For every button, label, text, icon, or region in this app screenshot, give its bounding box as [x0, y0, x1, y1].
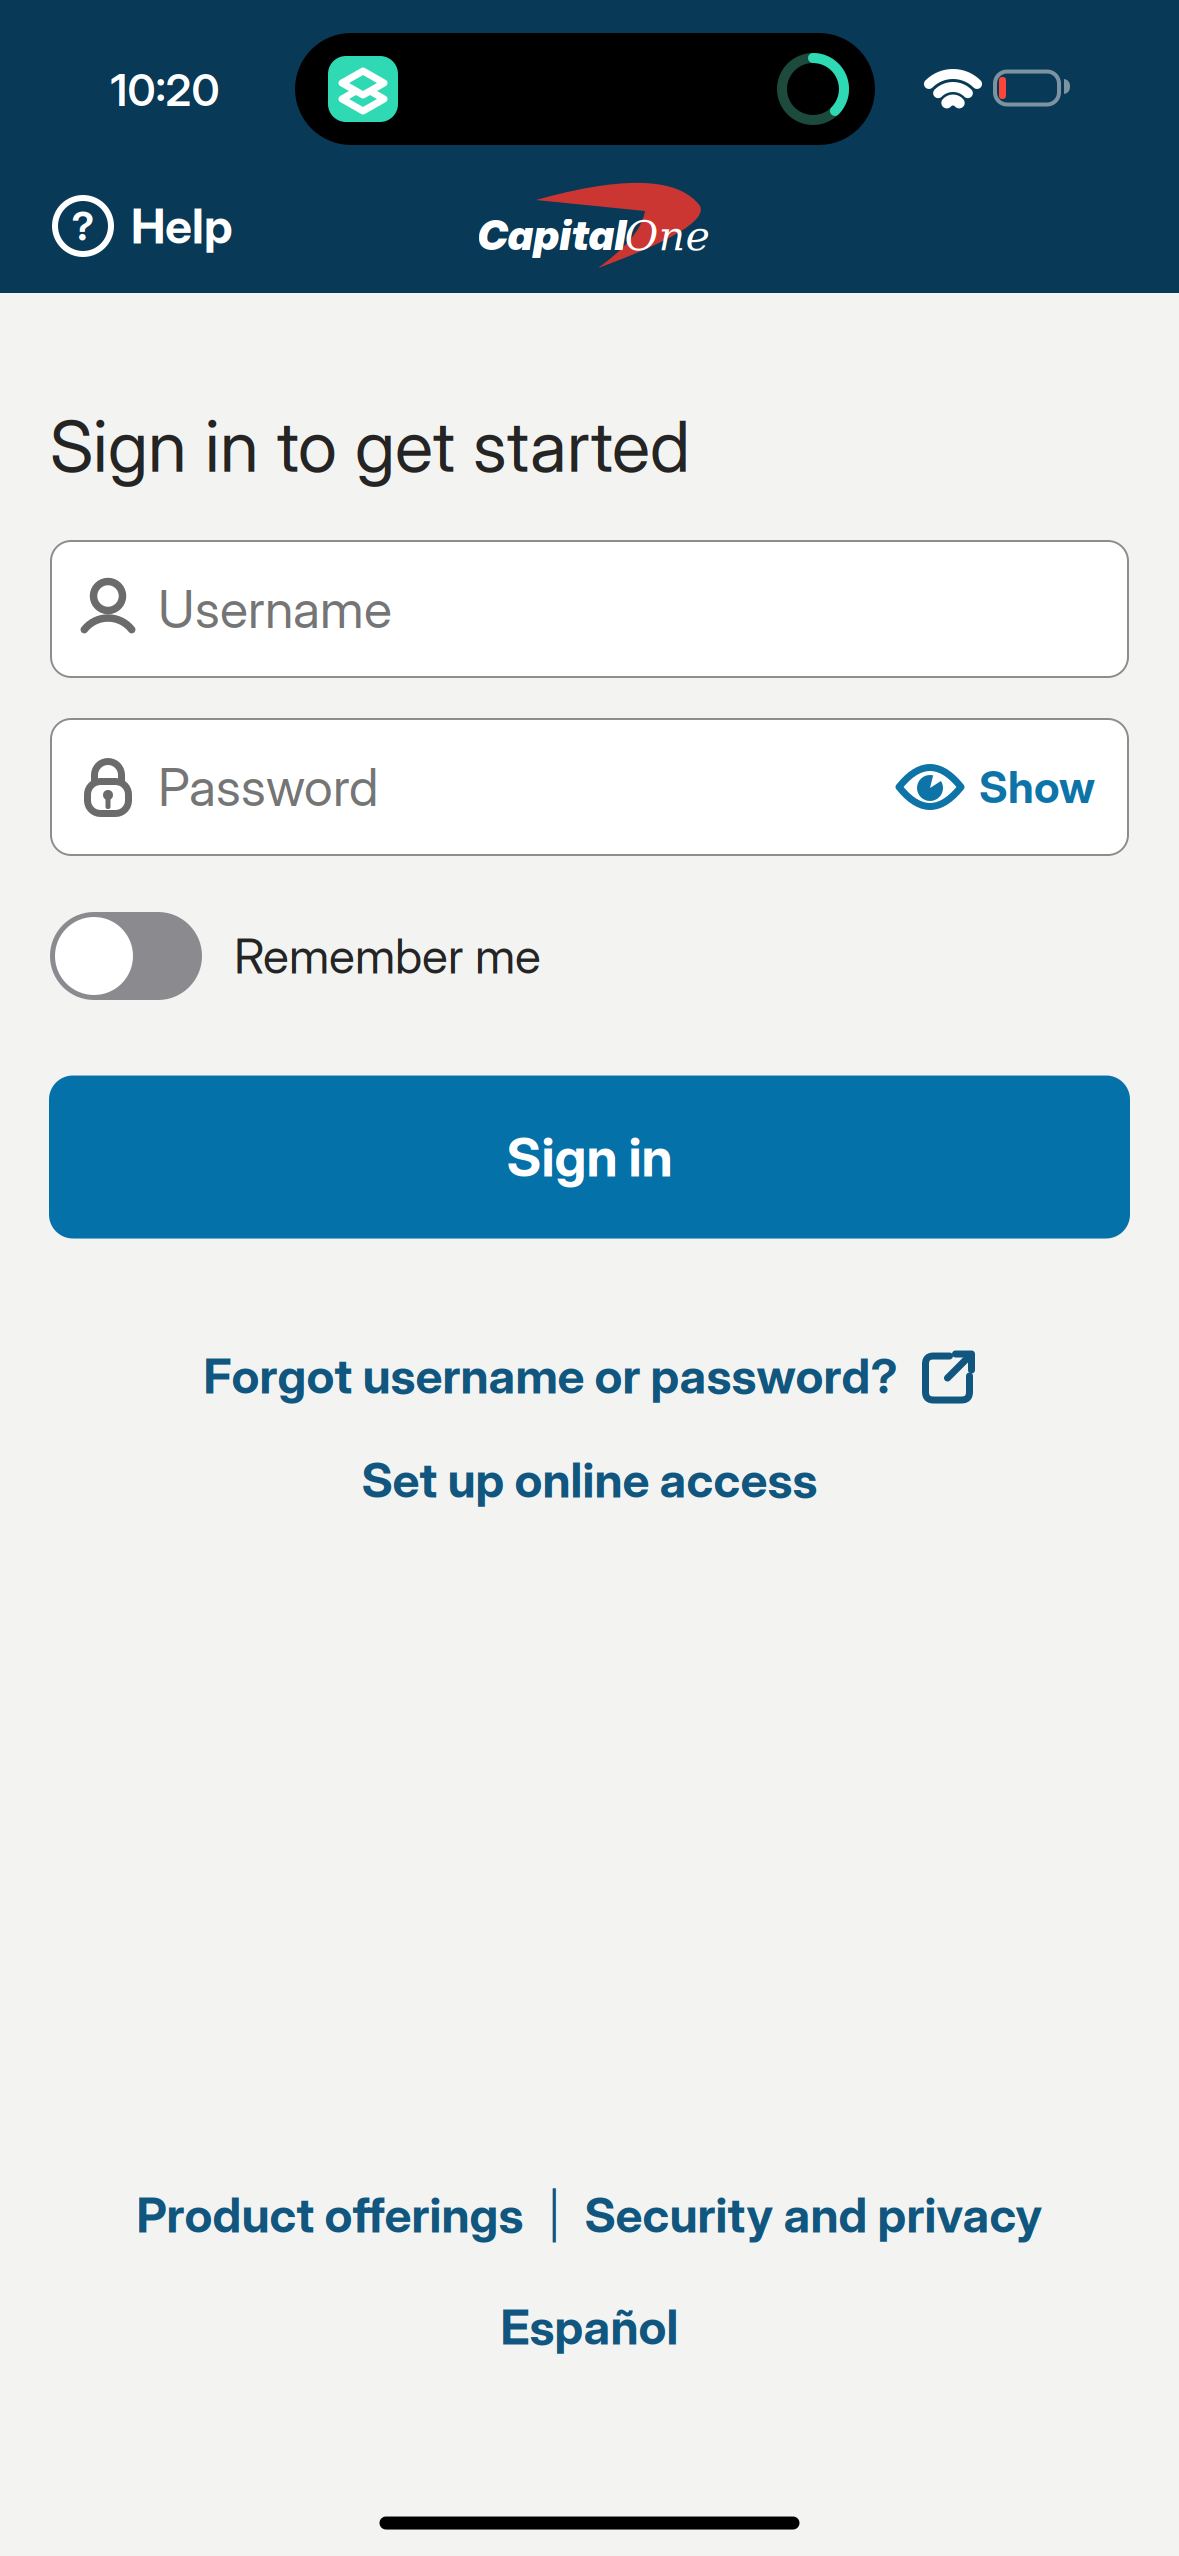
staticText: Set up online access: [361, 1452, 817, 1508]
staticText: |: [547, 2188, 560, 2242]
staticText: Security and privacy: [584, 2187, 1042, 2243]
button[interactable]: Forgot username or password?: [203, 1348, 975, 1404]
staticText: Show: [979, 761, 1095, 813]
button[interactable]: Product offerings: [136, 2187, 523, 2243]
button[interactable]: ?: [53, 196, 233, 256]
button[interactable]: Sign in: [49, 1075, 1130, 1238]
staticText: Sign in to get started: [50, 404, 690, 488]
staticText: Forgot username or password?: [203, 1348, 897, 1404]
button[interactable]: Set up online access: [361, 1452, 817, 1508]
staticText: 10:20: [110, 64, 219, 116]
button[interactable]: Security and privacy: [584, 2187, 1042, 2243]
staticText: Capital: [477, 211, 626, 259]
button[interactable]: Show password: [897, 761, 1095, 813]
staticText: Remember me: [234, 928, 541, 984]
button[interactable]: Remember me: [50, 912, 541, 1000]
staticText: Password: [158, 756, 378, 818]
staticText: One: [624, 212, 709, 260]
button[interactable]: Español: [500, 2299, 678, 2355]
staticText: Sign in: [506, 1125, 672, 1188]
button[interactable]: Username: [50, 540, 1129, 678]
staticText: Product offerings: [136, 2187, 523, 2243]
button[interactable]: Password: [50, 718, 1129, 856]
staticText: Username: [158, 578, 392, 640]
staticText: Español: [500, 2299, 678, 2355]
staticText: Help: [131, 198, 233, 254]
staticText: ?: [71, 202, 94, 250]
